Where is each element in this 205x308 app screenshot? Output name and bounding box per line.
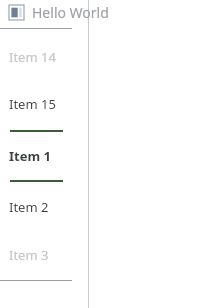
staticText: Item 2 (9, 198, 49, 216)
staticText: Item 15 (9, 95, 56, 113)
button[interactable]: App icon (0, 0, 205, 24)
button[interactable]: Item 14 (0, 45, 205, 69)
staticText: Hello World (32, 3, 109, 22)
other: App icon (9, 5, 24, 20)
button[interactable]: Item 2 (0, 195, 205, 219)
button[interactable]: Item 1 (0, 144, 205, 168)
staticText: Item 14 (9, 48, 56, 66)
button[interactable]: Item 15 (0, 92, 205, 116)
staticText: Item 1 (9, 147, 51, 165)
staticText: Item 3 (9, 246, 49, 264)
button[interactable]: Item 3 (0, 243, 205, 267)
